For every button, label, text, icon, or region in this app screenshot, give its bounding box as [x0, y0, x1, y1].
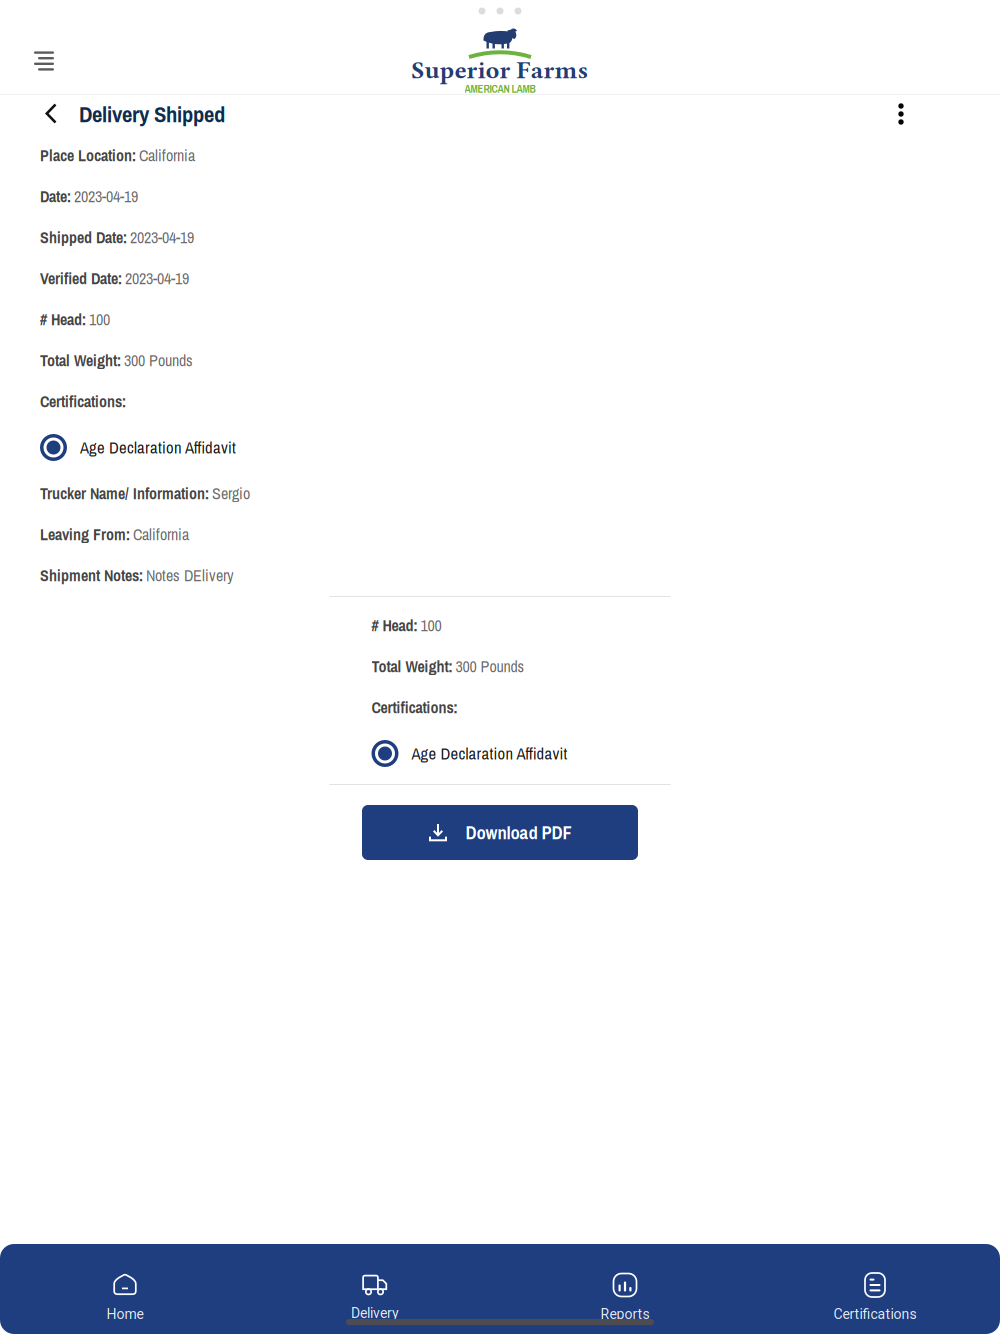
staticText: 300 Pounds: [124, 350, 193, 371]
staticText: 300 Pounds: [455, 656, 524, 677]
staticText: California: [133, 524, 189, 545]
button[interactable]: Delivery: [250, 1270, 500, 1325]
staticText: # Head:: [40, 309, 86, 330]
staticText: Reports: [600, 1306, 649, 1322]
staticText: Age Declaration Affidavit: [80, 436, 236, 459]
button[interactable]: Reports: [500, 1269, 750, 1326]
staticText: Date:: [40, 186, 71, 207]
staticText: Verified Date:: [40, 268, 122, 289]
staticText: Leaving From:: [40, 524, 130, 545]
staticText: Shipped Date:: [40, 227, 127, 248]
staticText: Total Weight:: [371, 656, 452, 677]
staticText: Age Declaration Affidavit: [411, 742, 567, 765]
staticText: California: [139, 145, 195, 166]
staticText: Notes DElivery: [146, 565, 234, 586]
button[interactable]: Download PDF: [362, 805, 638, 860]
staticText: Superior Farms: [411, 56, 588, 84]
staticText: # Head:: [371, 615, 417, 636]
staticText: Download PDF: [465, 820, 571, 845]
staticText: Delivery Shipped: [79, 99, 225, 129]
staticText: 2023-04-19: [130, 227, 194, 248]
button[interactable]: Back: [0, 98, 79, 130]
staticText: Trucker Name/ Information:: [40, 483, 209, 504]
staticText: Certifications:: [371, 697, 457, 718]
staticText: Sergio: [212, 483, 250, 504]
staticText: AMERICAN LAMB: [464, 82, 535, 96]
staticText: Certifications: [833, 1306, 916, 1322]
staticText: Certifications:: [40, 391, 126, 412]
staticText: 100: [89, 309, 110, 330]
button[interactable]: Certifications: [750, 1269, 1000, 1326]
staticText: 100: [420, 615, 441, 636]
button[interactable]: Home: [0, 1269, 250, 1326]
staticText: Shipment Notes:: [40, 565, 143, 586]
button[interactable]: Menu: [0, 22, 70, 71]
button[interactable]: More options: [876, 94, 926, 134]
staticText: Delivery: [351, 1305, 399, 1321]
staticText: Total Weight:: [40, 350, 121, 371]
staticText: Place Location:: [40, 145, 136, 166]
staticText: 2023-04-19: [125, 268, 189, 289]
staticText: Home: [106, 1306, 143, 1322]
staticText: 2023-04-19: [74, 186, 138, 207]
